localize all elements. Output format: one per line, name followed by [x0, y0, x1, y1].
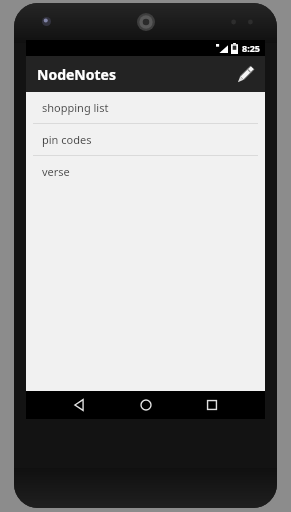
- button[interactable]: Back: [65, 391, 93, 419]
- staticText: NodeNotes: [37, 65, 116, 84]
- staticText: pin codes: [42, 132, 92, 147]
- button[interactable]: pin codes: [26, 124, 265, 155]
- button[interactable]: Recent apps: [198, 391, 226, 419]
- staticText: 8:25: [242, 42, 260, 54]
- button[interactable]: verse: [26, 156, 265, 187]
- button[interactable]: Home: [132, 391, 160, 419]
- button[interactable]: New note: [231, 59, 261, 89]
- staticText: verse: [42, 164, 70, 179]
- staticText: shopping list: [42, 100, 109, 115]
- button[interactable]: shopping list: [26, 92, 265, 123]
